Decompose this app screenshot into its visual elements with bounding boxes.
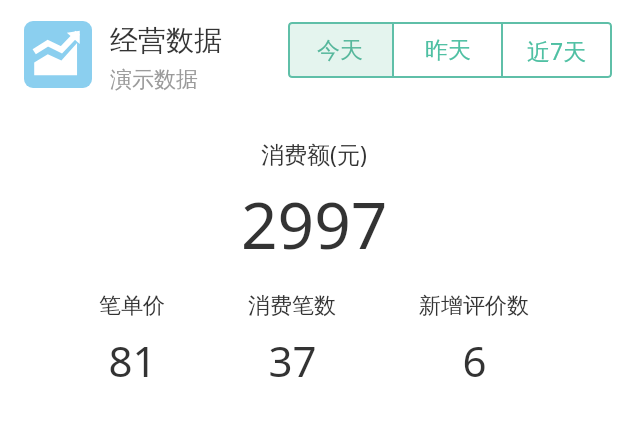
- staticText: 今天: [317, 36, 363, 65]
- other: Business data icon: [24, 21, 92, 88]
- button[interactable]: 近7天: [503, 22, 611, 78]
- button[interactable]: 今天: [288, 22, 392, 78]
- staticText: 近7天: [527, 35, 587, 66]
- button[interactable]: Business data icon: [24, 21, 222, 92]
- button[interactable]: 消费笔数: [248, 292, 336, 389]
- staticText: 经营数据: [110, 23, 222, 58]
- staticText: 演示数据: [110, 66, 198, 94]
- staticText: 昨天: [425, 36, 471, 65]
- staticText: 6: [462, 332, 487, 389]
- staticText: 消费额(元): [261, 138, 367, 169]
- staticText: 消费笔数: [248, 292, 336, 320]
- button[interactable]: 笔单价: [99, 292, 165, 389]
- staticText: 新增评价数: [419, 292, 529, 320]
- staticText: 37: [268, 332, 317, 389]
- staticText: 笔单价: [99, 292, 165, 320]
- button[interactable]: 昨天: [394, 22, 501, 78]
- staticText: 81: [108, 332, 157, 389]
- staticText: 2997: [241, 181, 388, 268]
- button[interactable]: 新增评价数: [419, 292, 529, 389]
